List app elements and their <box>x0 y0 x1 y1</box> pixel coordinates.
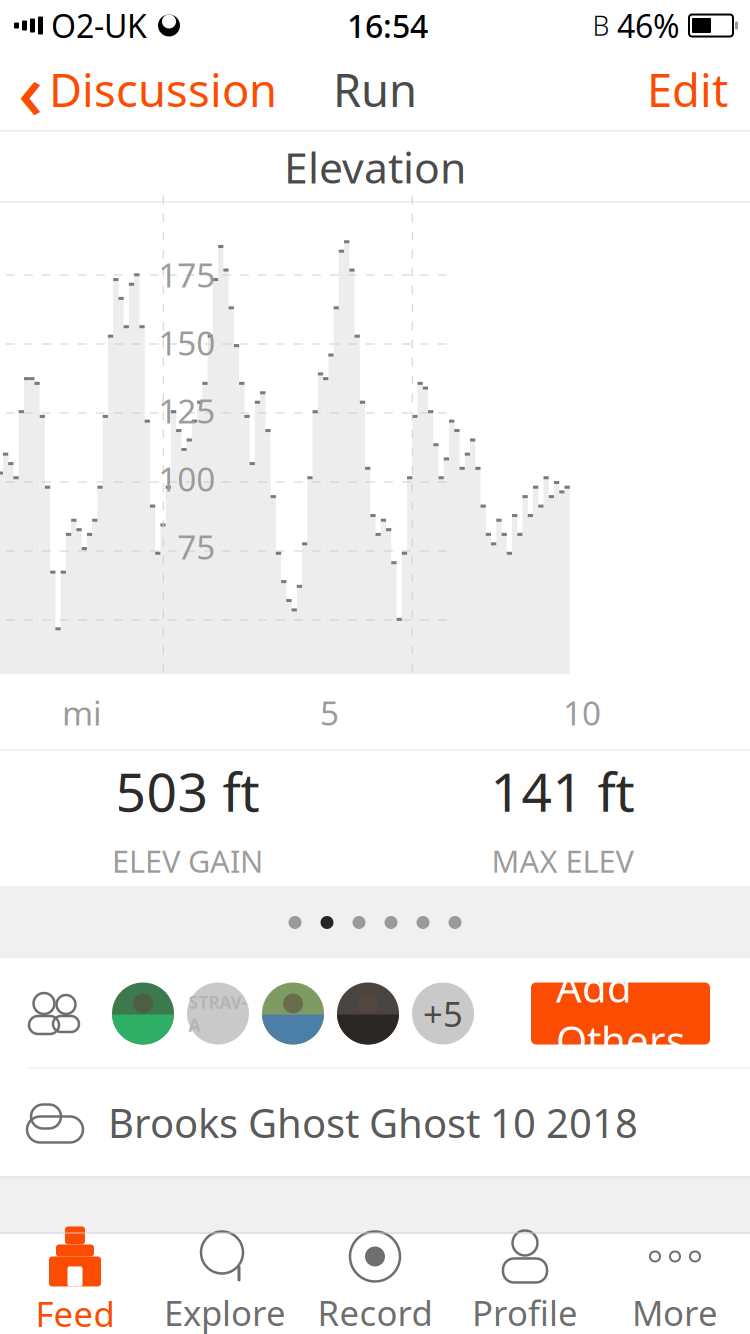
button[interactable]: Feed <box>0 1232 150 1330</box>
staticText: 125 <box>158 388 215 433</box>
staticText: More <box>632 1289 718 1334</box>
staticText: ELEV GAIN <box>112 840 263 881</box>
button[interactable]: More <box>600 1232 750 1330</box>
staticText: Edit <box>647 59 728 120</box>
button[interactable]: Record <box>300 1232 450 1330</box>
staticText: 10 <box>563 690 601 735</box>
staticText: MAX ELEV <box>491 840 633 881</box>
staticText: Add Others <box>556 960 685 1067</box>
button[interactable]: ‹ <box>0 32 277 147</box>
staticText: 100 <box>158 456 215 501</box>
staticText: 75 <box>177 524 215 569</box>
button[interactable]: Add Others <box>531 982 710 1044</box>
button[interactable]: Explore <box>150 1232 300 1330</box>
staticText: STRAVA <box>188 990 247 1036</box>
staticText: 5 <box>320 690 339 735</box>
staticText: Run <box>333 59 417 120</box>
button[interactable]: Edit <box>647 53 750 126</box>
staticText: Feed <box>35 1290 114 1334</box>
staticText: 503 ft <box>115 756 259 826</box>
staticText: 16:54 <box>347 4 428 47</box>
staticText: Elevation <box>284 139 466 195</box>
staticText: 46% <box>617 4 680 47</box>
staticText: ‹ <box>18 38 43 141</box>
staticText: B <box>592 8 609 43</box>
staticText: 141 ft <box>490 756 634 826</box>
staticText: +5 <box>423 990 463 1036</box>
staticText: Profile <box>472 1289 578 1334</box>
staticText: Brooks Ghost Ghost 10 2018 <box>108 1096 638 1149</box>
staticText: Explore <box>164 1289 286 1334</box>
staticText: 175 <box>158 252 215 297</box>
staticText: Discussion <box>49 59 277 120</box>
staticText: O2-UK <box>51 4 147 47</box>
staticText: 150 <box>158 320 215 365</box>
staticText: mi <box>62 690 102 735</box>
button[interactable]: Profile <box>450 1232 600 1330</box>
staticText: Record <box>317 1289 432 1334</box>
